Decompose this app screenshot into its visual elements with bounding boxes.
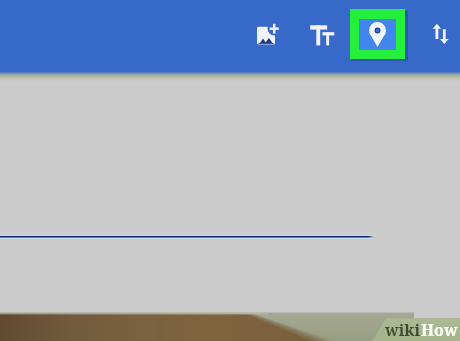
- button[interactable]: Add location: [350, 9, 405, 59]
- button[interactable]: Text format: [308, 20, 338, 48]
- button[interactable]: Sort: [428, 20, 456, 48]
- staticText: wiki: [385, 319, 421, 341]
- button[interactable]: Insert image: [252, 20, 281, 48]
- staticText: How: [421, 319, 458, 341]
